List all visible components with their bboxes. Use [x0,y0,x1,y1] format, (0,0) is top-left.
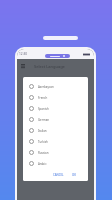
button[interactable]: French [23,92,88,103]
button[interactable]: Arabic [23,158,88,169]
button[interactable]: German [23,114,88,125]
staticText: Select Language [34,64,65,69]
button[interactable]: Russian [23,147,88,158]
staticText: OK [72,173,76,177]
button[interactable]: Spanish [23,103,88,114]
button[interactable]: CANCEL [51,171,66,179]
button[interactable]: Azerbaycan [23,81,88,92]
staticText: Italian [38,129,47,133]
staticText: French [38,96,48,100]
staticText: Spanish [38,107,49,111]
staticText: German [38,118,50,122]
staticText: 12:30 [19,52,28,56]
staticText: Arabic [38,162,47,166]
staticText: Turkish [38,140,48,144]
button[interactable]: Italian [23,125,88,136]
staticText: Russian [38,151,49,155]
button[interactable]: OK [70,171,78,179]
staticText: CANCEL [53,173,64,177]
staticText: Azerbaycan [38,85,54,89]
button[interactable]: Turkish [23,136,88,147]
button[interactable]: Menu [20,63,26,69]
